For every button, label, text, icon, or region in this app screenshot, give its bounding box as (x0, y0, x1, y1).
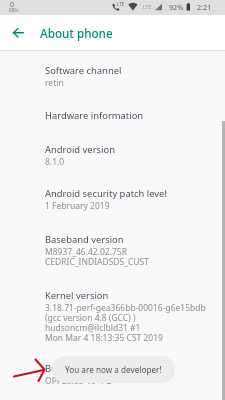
staticText: KB/s (9, 7, 19, 13)
button[interactable]: Navigate up (3, 18, 32, 47)
staticText: Android security patch level (45, 187, 167, 200)
button[interactable]: Android security patch level (0, 187, 225, 217)
staticText: About phone (40, 25, 113, 41)
staticText: 1 February 2019 (45, 200, 110, 212)
button[interactable]: Software channel (0, 64, 225, 94)
staticText: Baseband version (45, 233, 124, 246)
staticText: retin (45, 77, 64, 89)
staticText: OPP28.85-19-4-2 (45, 375, 112, 387)
staticText: LTE (143, 3, 152, 10)
staticText: M8937_46.42.02.75R CEDRIC_INDIADSDS_CUST (45, 246, 149, 267)
staticText: Android version (45, 143, 115, 156)
button[interactable]: Android version (0, 143, 225, 173)
staticText: LTE (117, 1, 125, 7)
button[interactable]: Build number (0, 362, 225, 396)
staticText: 2:21 (197, 2, 212, 12)
button[interactable]: Hardware information (0, 109, 225, 139)
staticText: 8.1.0 (45, 156, 65, 168)
staticText: 92% (169, 2, 184, 12)
button[interactable]: You are now a developer! (52, 356, 175, 383)
button[interactable]: Baseband version (0, 233, 225, 271)
button[interactable]: Kernel version (0, 289, 225, 345)
staticText: Build number (45, 362, 106, 375)
staticText: 0 (10, 0, 15, 10)
staticText: Software channel (45, 64, 122, 77)
staticText: 3.18.71-perf-gea366bb-00016-g6e15bdb (gc… (45, 302, 206, 343)
staticText: Hardware information (45, 109, 144, 122)
staticText: You are now a developer! (65, 364, 162, 375)
staticText: Kernel version (45, 289, 109, 302)
